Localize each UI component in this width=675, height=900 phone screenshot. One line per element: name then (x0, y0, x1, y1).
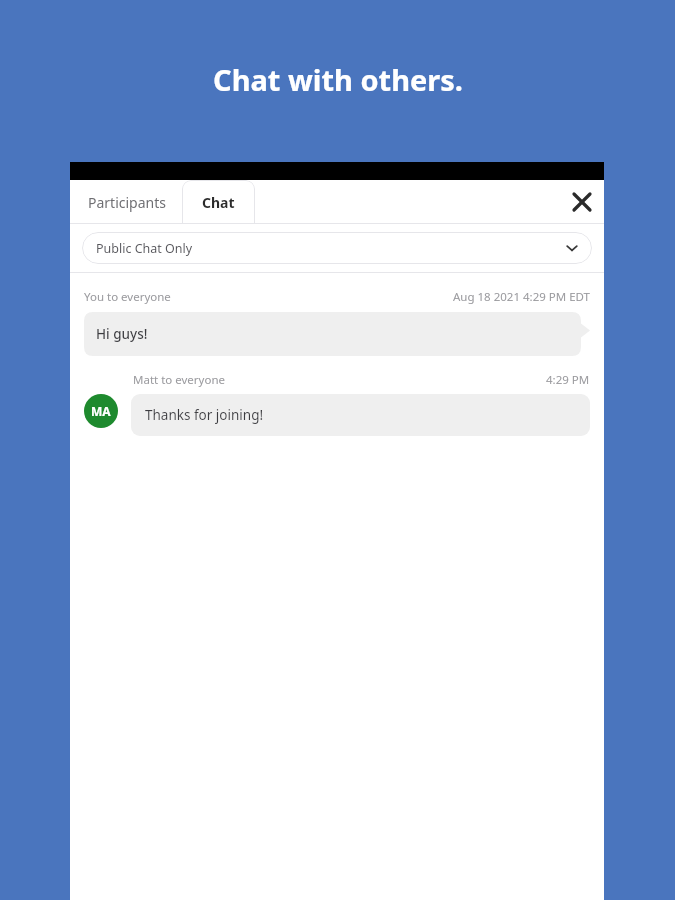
button[interactable]: Matt avatar (84, 394, 118, 428)
button[interactable]: Chat (182, 180, 255, 224)
staticText: Hi guys! (96, 325, 148, 343)
button[interactable]: Close (560, 180, 604, 224)
button[interactable]: Participants (70, 180, 182, 224)
button[interactable]: Thanks for joining! (131, 394, 590, 436)
staticText: Participants (88, 193, 166, 212)
staticText: Matt to everyone (133, 372, 226, 388)
button[interactable]: Hi guys! (84, 312, 590, 356)
staticText: Public Chat Only (96, 240, 193, 257)
button[interactable]: Public Chat Only (82, 232, 592, 264)
staticText: Chat (202, 193, 235, 212)
staticText: 4:29 PM (546, 372, 590, 388)
staticText: You to everyone (84, 289, 171, 305)
staticText: Aug 18 2021 4:29 PM EDT (453, 289, 590, 305)
staticText: Chat with others. (213, 60, 463, 99)
staticText: MA (91, 403, 111, 419)
staticText: Thanks for joining! (145, 406, 264, 424)
